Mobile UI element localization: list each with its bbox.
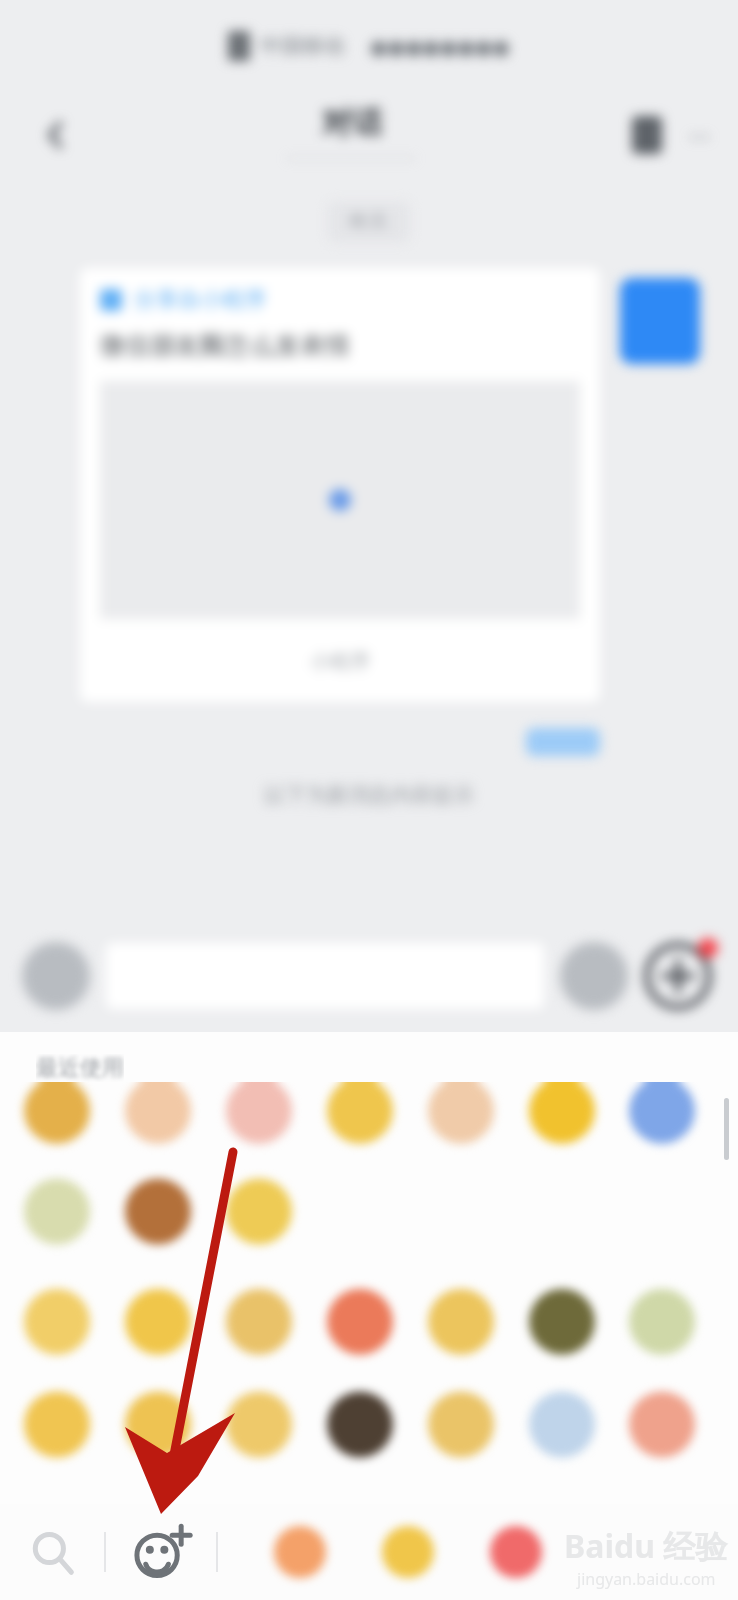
staticText: 中国移动 (260, 33, 344, 59)
staticText: ··· (689, 118, 710, 153)
button[interactable]: Search emoji (0, 1504, 104, 1600)
staticText: 小程序 (310, 649, 370, 674)
staticText: jingyan.baidu.com (577, 1568, 716, 1590)
staticText: Baidu 经验 (564, 1524, 728, 1568)
button[interactable]: Contact info (619, 107, 675, 163)
staticText: 昨天 (350, 210, 388, 234)
button[interactable]: More options (640, 938, 716, 1014)
staticText: 对话 (322, 104, 382, 142)
staticText: ●●●●●●●● (370, 35, 510, 58)
staticText: 以下为新消息内容提示 (264, 782, 474, 808)
staticText: 微信朋友圈怎么发表情 (100, 330, 350, 361)
staticText: 最近使用 (36, 1054, 124, 1082)
staticText: 分享自小程序 (134, 286, 266, 314)
button[interactable]: 分享自小程序 (80, 268, 600, 702)
button[interactable]: Back (28, 107, 84, 163)
button[interactable]: Emoji (560, 942, 628, 1010)
button[interactable] (620, 278, 700, 364)
button[interactable]: Voice input (22, 942, 90, 1010)
button[interactable]: Add sticker (106, 1504, 216, 1600)
